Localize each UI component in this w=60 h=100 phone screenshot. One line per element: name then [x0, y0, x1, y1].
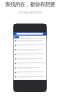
staticText: 查找所在，都你有想要 [5, 1, 55, 8]
staticText: 万件素材随意使用 [18, 11, 42, 14]
